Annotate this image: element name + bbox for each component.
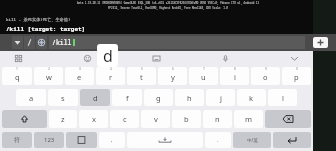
staticText: r	[109, 72, 113, 82]
staticText: 4	[110, 67, 112, 71]
staticText: beta 1.19.20.11 (MCBEDRVRGRS) GameOLED E…	[77, 1, 260, 5]
staticText: 5	[141, 67, 143, 71]
button[interactable]: b	[172, 110, 201, 128]
staticText: i	[234, 72, 236, 82]
button[interactable]: n	[203, 110, 232, 128]
button[interactable]: Shift	[2, 110, 47, 128]
button[interactable]: 2	[34, 67, 63, 85]
button[interactable]: 9	[251, 67, 280, 85]
button[interactable]: x	[79, 110, 108, 128]
staticText: 3	[79, 67, 81, 71]
staticText: v	[154, 114, 158, 124]
staticText: /kill [target: target]	[6, 25, 86, 33]
button[interactable]: 3	[65, 67, 94, 85]
button[interactable]: ,	[99, 132, 125, 148]
button[interactable]: Keyboard	[150, 52, 163, 65]
button[interactable]: c	[110, 110, 139, 128]
staticText: c	[123, 114, 127, 124]
button[interactable]: g	[144, 89, 173, 106]
staticText: y	[171, 72, 175, 82]
button[interactable]: Enter	[273, 132, 311, 148]
button[interactable]: k	[237, 89, 266, 106]
button[interactable]: 8	[220, 67, 249, 85]
staticText: ,	[111, 136, 113, 144]
button[interactable]: f	[112, 89, 142, 106]
button[interactable]: Command history	[12, 36, 23, 49]
button[interactable]: 符	[2, 132, 32, 148]
button[interactable]: m	[234, 110, 263, 128]
button[interactable]: /kill	[49, 36, 305, 49]
staticText: q	[15, 72, 20, 82]
button[interactable]: Space	[127, 132, 203, 148]
button[interactable]: Hide keyboard	[288, 52, 301, 65]
button[interactable]: h	[175, 89, 204, 106]
button[interactable]: s	[48, 89, 78, 106]
button[interactable]: Emoji	[81, 52, 94, 65]
button[interactable]: Slash command	[24, 36, 35, 49]
staticText: g	[156, 93, 161, 103]
staticText: e	[77, 72, 82, 82]
button[interactable]: 0	[282, 67, 311, 85]
staticText: 7	[203, 67, 205, 71]
staticText: 123	[44, 136, 55, 144]
staticText: 符	[14, 136, 20, 144]
staticText: x	[92, 114, 96, 124]
staticText: l	[282, 93, 284, 103]
button[interactable]: Settings	[36, 36, 47, 49]
button[interactable]: j	[206, 89, 235, 106]
staticText: /kill	[52, 38, 72, 47]
staticText: b	[184, 114, 189, 124]
staticText: j	[220, 93, 222, 103]
button[interactable]: l	[268, 89, 297, 106]
button[interactable]: z	[49, 110, 77, 128]
staticText: FF2512, Server TrueSL2, RenCOMD, Highest…	[108, 6, 228, 10]
staticText: d	[93, 93, 98, 103]
staticText: 0	[296, 67, 298, 71]
staticText: t	[140, 72, 143, 82]
button[interactable]: 6	[158, 67, 187, 85]
staticText: 6	[172, 67, 174, 71]
button[interactable]: 4	[96, 67, 125, 85]
button[interactable]: a	[16, 89, 46, 106]
staticText: u	[201, 72, 206, 82]
staticText: m	[245, 114, 253, 124]
staticText: 1	[16, 67, 18, 71]
button[interactable]: 123	[34, 132, 64, 148]
staticText: 2	[48, 67, 50, 71]
button[interactable]: v	[141, 110, 170, 128]
button[interactable]: Language	[66, 132, 97, 148]
staticText: n	[215, 114, 220, 124]
staticText: s	[61, 93, 65, 103]
staticText: a	[29, 93, 34, 103]
staticText: w	[46, 72, 52, 82]
button[interactable]: 1	[2, 67, 32, 85]
button[interactable]: 中/英	[233, 132, 271, 148]
button[interactable]: 5	[127, 67, 156, 85]
staticText: o	[263, 72, 268, 82]
staticText: z	[61, 114, 65, 124]
button[interactable]: 7	[189, 67, 218, 85]
staticText: h	[187, 93, 192, 103]
staticText: 8	[234, 67, 236, 71]
button[interactable]: Clipboard	[12, 52, 25, 65]
button[interactable]: d	[80, 89, 110, 106]
staticText: 9	[265, 67, 267, 71]
staticText: k	[249, 93, 254, 103]
staticText: d	[103, 45, 113, 67]
staticText: .	[217, 136, 219, 144]
staticText: f	[126, 93, 129, 103]
staticText: p	[294, 72, 299, 82]
button[interactable]: Backspace	[265, 110, 311, 128]
button[interactable]: Send	[313, 37, 328, 48]
button[interactable]: Voice input	[219, 52, 232, 65]
staticText: 中/英	[247, 137, 258, 143]
staticText: kill - 杀死实体(死亡、生命值)	[6, 17, 71, 23]
